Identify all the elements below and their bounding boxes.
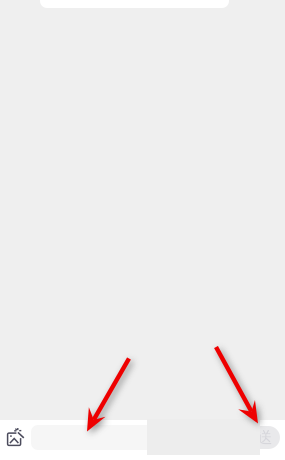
button[interactable]: Message input	[31, 425, 229, 450]
button[interactable]: Generate image	[7, 425, 31, 450]
staticText: 发送	[240, 428, 272, 447]
button[interactable]: 发送	[233, 426, 280, 449]
